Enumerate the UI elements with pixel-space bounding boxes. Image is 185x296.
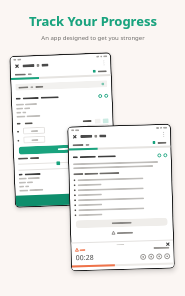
button[interactable]: Timer control xyxy=(164,253,170,259)
button[interactable] xyxy=(23,127,45,134)
button[interactable] xyxy=(95,118,101,124)
button[interactable] xyxy=(87,124,109,132)
button[interactable] xyxy=(71,230,173,235)
button[interactable] xyxy=(87,133,109,141)
button[interactable] xyxy=(76,218,168,228)
button[interactable]: Timer control xyxy=(140,253,146,259)
button[interactable]: Close timer xyxy=(165,242,169,246)
button[interactable]: Timer control xyxy=(148,253,154,259)
button[interactable] xyxy=(15,80,107,91)
button[interactable]: Info xyxy=(104,93,108,97)
button[interactable] xyxy=(15,192,116,207)
button[interactable]: Close xyxy=(72,134,77,139)
button[interactable]: More options xyxy=(161,132,166,137)
button[interactable] xyxy=(18,158,110,167)
staticText: 00:28 xyxy=(75,253,94,263)
button[interactable] xyxy=(23,136,45,143)
button[interactable]: Timer xyxy=(98,93,102,98)
staticText: Track Your Progress xyxy=(29,12,157,30)
button[interactable] xyxy=(19,143,109,155)
staticText: An app designed to get you stronger xyxy=(41,34,145,42)
button[interactable]: More options xyxy=(101,60,107,65)
button[interactable]: Timer xyxy=(157,153,161,157)
button[interactable]: Close xyxy=(14,64,20,69)
button[interactable] xyxy=(103,118,109,123)
button[interactable]: Timer control xyxy=(156,253,162,259)
button[interactable]: Info xyxy=(163,153,167,157)
